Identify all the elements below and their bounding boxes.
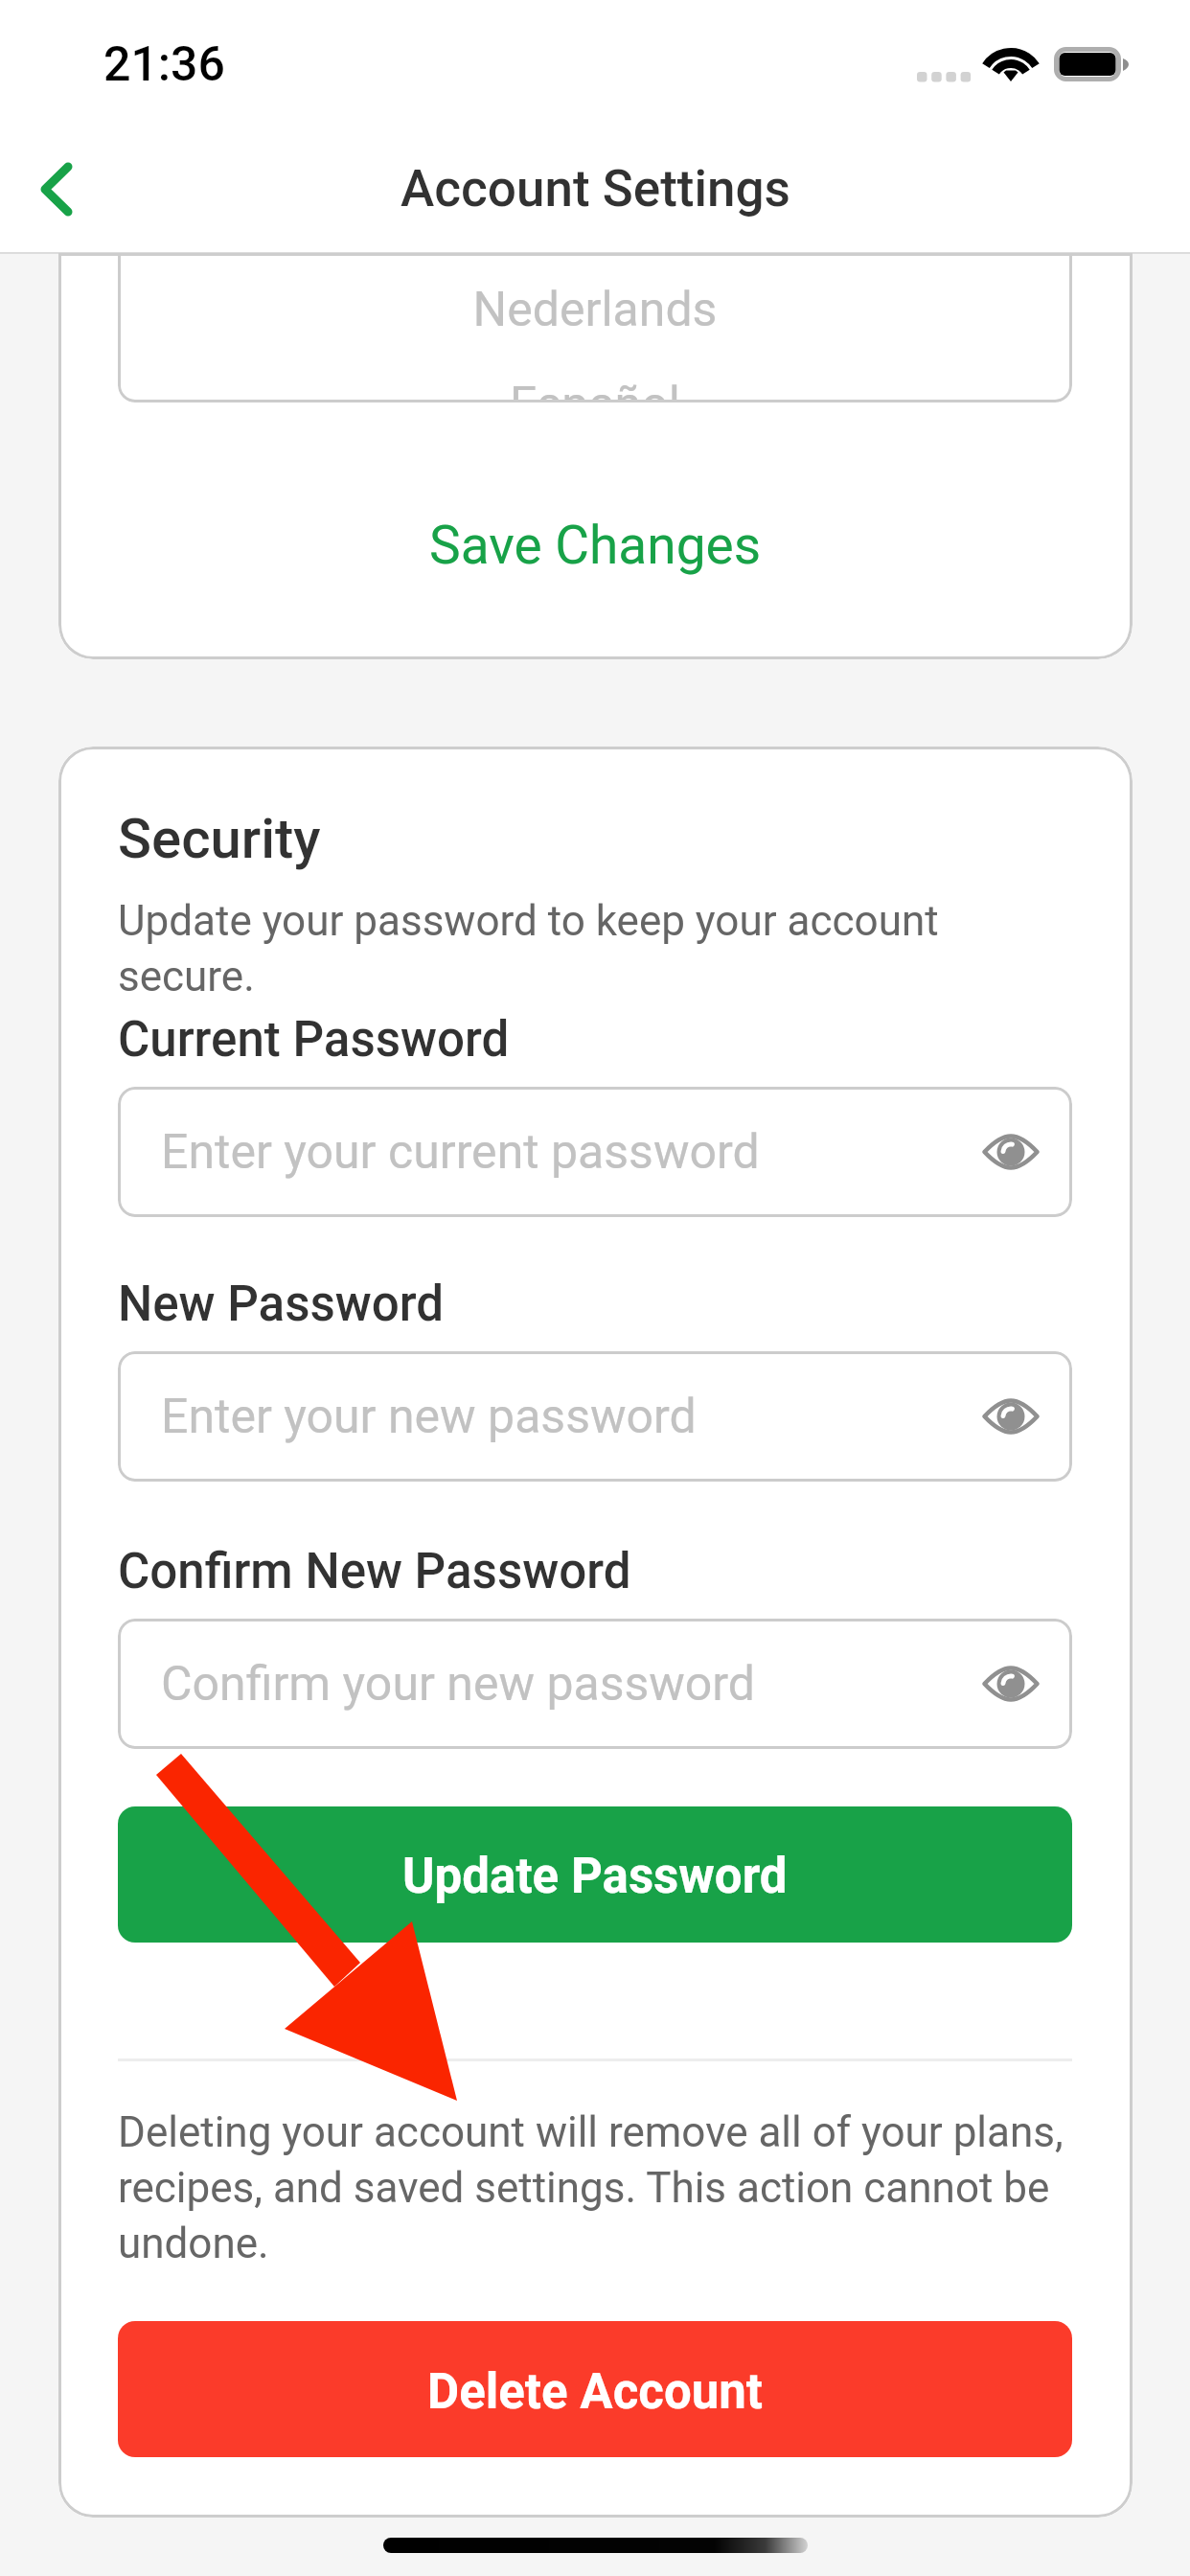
staticText: Delete Account [427, 2363, 764, 2421]
staticText: Enter your current password [161, 1124, 760, 1181]
staticText: Confirm your new password [161, 1656, 756, 1713]
staticText: Update Password [402, 1848, 788, 1905]
staticText: Confirm New Password [118, 1543, 631, 1600]
button[interactable]: Nederlands [118, 253, 1072, 402]
button[interactable]: Show password [975, 1381, 1046, 1452]
staticText: Save Changes [429, 515, 762, 576]
button[interactable]: Show password [975, 1116, 1046, 1187]
button[interactable]: Confirm your new password [118, 1619, 1072, 1749]
button[interactable]: Back [11, 145, 103, 233]
button[interactable]: Delete Account [118, 2321, 1072, 2457]
staticText: Update your password to keep your accoun… [118, 896, 939, 1001]
button[interactable]: Show password [975, 1648, 1046, 1719]
staticText: Current Password [118, 1011, 510, 1069]
staticText: 21:36 [103, 36, 225, 93]
button[interactable]: Enter your new password [118, 1351, 1072, 1482]
staticText: New Password [118, 1276, 445, 1333]
staticText: Account Settings [400, 159, 790, 218]
staticText: Nederlands [118, 282, 1072, 338]
staticText: Español [118, 377, 1072, 402]
button[interactable]: Save Changes [58, 488, 1133, 603]
staticText: Security [118, 806, 321, 871]
staticText: Enter your new password [161, 1389, 697, 1445]
button[interactable]: Enter your current password [118, 1087, 1072, 1217]
button[interactable]: Update Password [118, 1806, 1072, 1943]
staticText: Deleting your account will remove all of… [118, 2107, 1064, 2268]
